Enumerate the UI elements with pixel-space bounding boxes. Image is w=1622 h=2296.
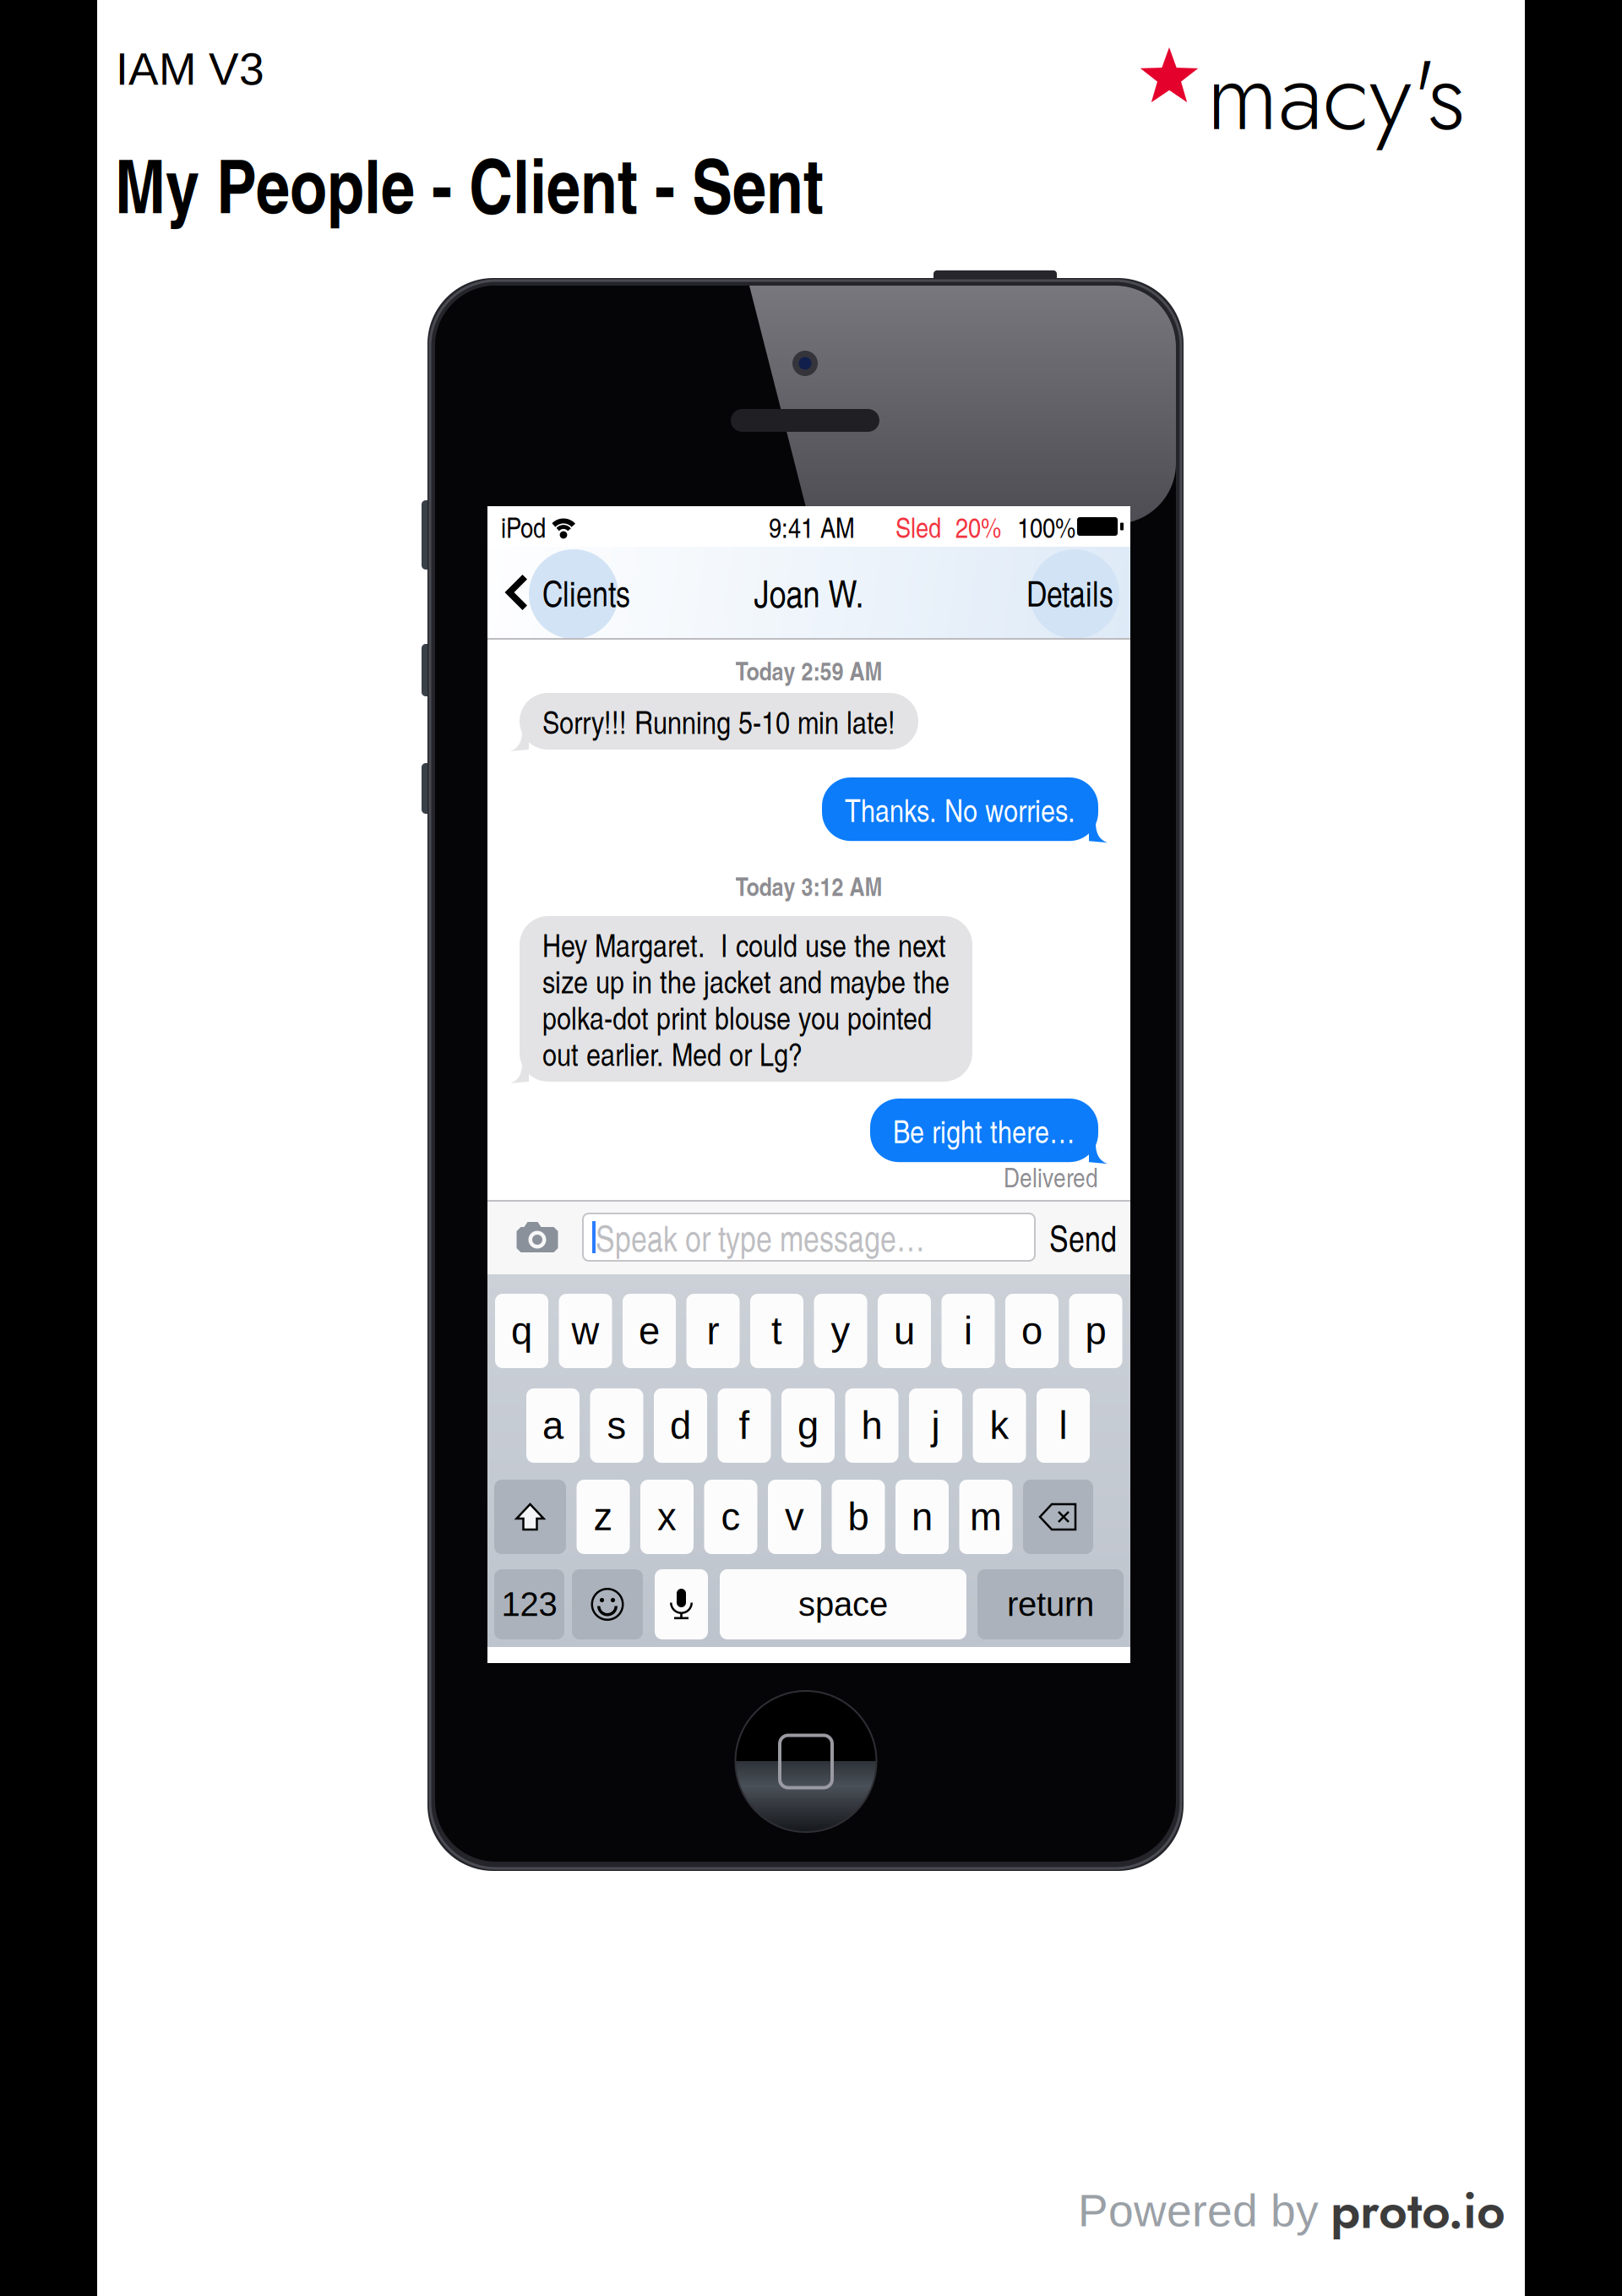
staticText: Today 2:59 AM [735,652,882,688]
staticText: k [990,1404,1009,1447]
button[interactable]: p [1069,1294,1122,1368]
button[interactable]: u [878,1294,931,1368]
button[interactable]: x [640,1480,694,1554]
button[interactable]: Emoji [572,1569,643,1639]
staticText: d [670,1404,691,1447]
staticText: Sled [895,507,941,546]
staticText: proto.io [1331,2175,1505,2246]
staticText: Clients [542,568,630,616]
button[interactable]: 123 [494,1569,564,1639]
button[interactable]: m [959,1480,1012,1554]
button[interactable]: k [973,1388,1026,1463]
staticText: p [1085,1310,1106,1352]
staticText: f [739,1404,750,1447]
staticText: o [1021,1310,1042,1352]
staticText: g [797,1404,819,1447]
button[interactable]: g [781,1388,835,1463]
staticText: macy's [1206,25,1466,165]
staticText: iPod [501,507,546,546]
staticText: y [831,1310,850,1352]
staticText: Thanks. No worries. [845,788,1075,831]
button[interactable]: w [559,1294,612,1368]
button[interactable]: e [623,1294,676,1368]
button[interactable]: Dictate [655,1569,708,1639]
button[interactable]: i [942,1294,995,1368]
staticText: c [721,1495,740,1538]
button[interactable]: z [577,1480,630,1554]
staticText: i [964,1310,972,1352]
staticText: r [707,1310,719,1352]
button[interactable]: q [495,1294,548,1368]
staticText: Joan W. [754,567,864,618]
button[interactable]: l [1037,1388,1090,1463]
button[interactable]: return [977,1569,1124,1639]
button[interactable]: n [895,1480,949,1554]
button[interactable]: s [590,1388,643,1463]
button[interactable]: t [750,1294,803,1368]
staticText: My People - Client - Sent [115,131,824,236]
button[interactable]: h [845,1388,898,1463]
staticText: h [861,1404,882,1447]
staticText: s [607,1404,626,1447]
staticText: 20% [955,507,1001,546]
button[interactable]: Camera [514,1201,561,1273]
staticText: l [1059,1404,1067,1447]
button[interactable]: Delete [1023,1480,1093,1554]
button[interactable]: v [768,1480,821,1554]
button[interactable]: o [1005,1294,1059,1368]
button[interactable]: a [526,1388,580,1463]
staticText: IAM V3 [116,44,264,94]
button[interactable]: y [814,1294,867,1368]
button[interactable]: d [654,1388,707,1463]
staticText: w [572,1310,599,1352]
staticText: Be right there… [893,1109,1075,1152]
button[interactable]: j [909,1388,962,1463]
staticText: x [657,1495,677,1538]
staticText: n [912,1495,933,1538]
staticText: Today 3:12 AM [735,867,882,904]
staticText: 123 [501,1585,557,1623]
staticText: b [848,1495,869,1538]
staticText: Details [1026,568,1113,616]
button[interactable]: f [718,1388,771,1463]
staticText: 9:41 AM [769,507,855,546]
staticText: e [639,1310,660,1352]
staticText: Speak or type message… [596,1213,925,1261]
button[interactable]: Details [1008,547,1130,638]
staticText: m [970,1495,1002,1538]
staticText: u [894,1310,915,1352]
staticText: Sorry!!! Running 5-10 min late! [542,703,895,739]
button[interactable]: r [686,1294,740,1368]
staticText: return [1007,1585,1094,1623]
button[interactable]: Send [1041,1201,1125,1273]
staticText: j [931,1404,940,1447]
button[interactable]: c [704,1480,757,1554]
staticText: 100% [1017,507,1075,546]
staticText: Hey Margaret. I could use the next size … [542,926,950,1072]
staticText: Send [1049,1213,1117,1261]
button[interactable]: b [832,1480,885,1554]
staticText: space [798,1585,888,1623]
button[interactable]: Clients [487,547,645,638]
staticText: a [542,1404,563,1447]
staticText: v [785,1495,804,1538]
staticText: Powered by [1078,2185,1319,2236]
staticText: Delivered [1004,1158,1098,1195]
staticText: q [511,1310,532,1352]
staticText: z [593,1495,613,1538]
button[interactable]: space [720,1569,966,1639]
button[interactable]: Shift [494,1480,566,1554]
staticText: t [771,1310,782,1352]
